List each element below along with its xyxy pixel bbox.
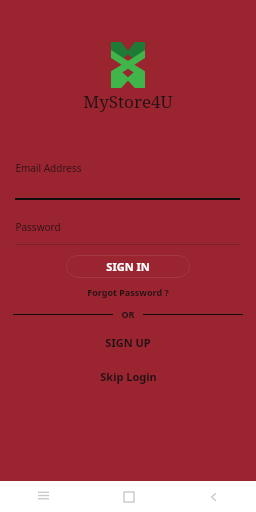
staticText: SIGN IN (106, 259, 150, 274)
button[interactable]: SIGN IN (66, 255, 190, 278)
button[interactable]: Home (86, 481, 171, 512)
button[interactable]: Email Address (0, 152, 256, 198)
staticText: Password (15, 220, 61, 234)
staticText: MyStore4U (83, 90, 173, 113)
staticText: SIGN UP (105, 335, 151, 350)
staticText: OR (121, 308, 135, 320)
button[interactable]: Recent apps (0, 481, 86, 512)
staticText: Skip Login (100, 369, 157, 384)
button[interactable]: Forgot Password ? (77, 284, 179, 300)
button[interactable]: SIGN UP (91, 332, 165, 353)
staticText: Email Address (15, 161, 82, 175)
staticText: Forgot Password ? (87, 286, 169, 298)
button[interactable]: Password (0, 218, 256, 244)
button[interactable]: Back (171, 481, 256, 512)
button[interactable]: Skip Login (86, 366, 171, 387)
